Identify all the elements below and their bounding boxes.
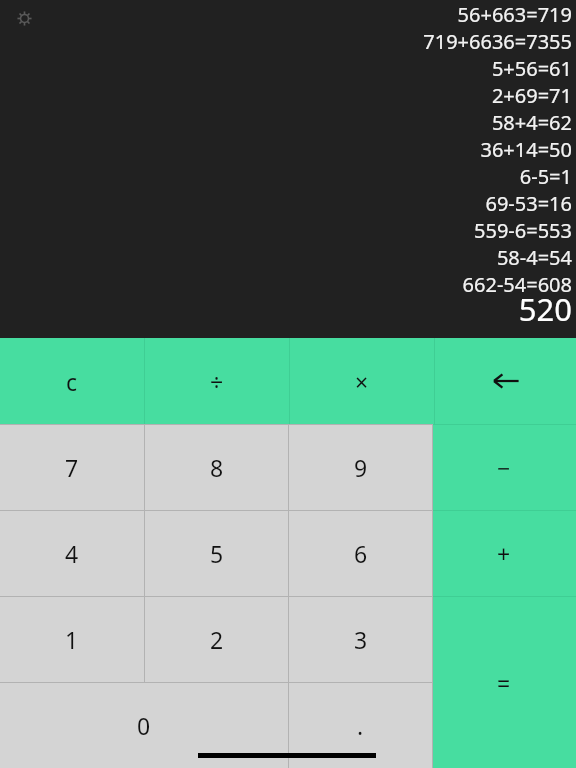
button[interactable]: =	[432, 597, 576, 768]
staticText: 2	[210, 624, 224, 655]
button[interactable]: Backspace	[435, 338, 576, 424]
staticText: c	[66, 366, 78, 397]
staticText: 0	[137, 710, 151, 741]
button[interactable]: .	[289, 683, 432, 768]
staticText: 6	[354, 538, 368, 569]
staticText: 36+14=50	[480, 136, 572, 163]
staticText: 662-54=608	[462, 271, 572, 298]
button[interactable]: 4	[0, 511, 144, 596]
staticText: .	[357, 710, 364, 741]
staticText: 58-4=54	[496, 244, 572, 271]
button[interactable]: 9	[289, 425, 432, 510]
staticText: −	[497, 452, 511, 483]
staticText: 1	[65, 624, 79, 655]
staticText: 3	[354, 624, 368, 655]
staticText: 69-53=16	[485, 190, 572, 217]
button[interactable]: 0	[0, 683, 288, 768]
button[interactable]: 2	[145, 597, 288, 682]
button[interactable]: 7	[0, 425, 144, 510]
staticText: 56+663=719	[457, 1, 572, 28]
button[interactable]: Settings	[12, 6, 36, 30]
staticText: 7	[65, 452, 79, 483]
button[interactable]: ×	[290, 338, 434, 424]
staticText: 2+69=71	[491, 82, 572, 109]
staticText: +	[497, 538, 511, 569]
staticText: 4	[65, 538, 79, 569]
button[interactable]: −	[432, 425, 576, 510]
staticText: 58+4=62	[491, 109, 572, 136]
staticText: 719+6636=7355	[423, 28, 572, 55]
button[interactable]: 3	[289, 597, 432, 682]
staticText: 5+56=61	[491, 55, 572, 82]
staticText: ÷	[210, 366, 224, 397]
staticText: 520	[518, 288, 572, 330]
button[interactable]: 6	[289, 511, 432, 596]
staticText: 9	[354, 452, 368, 483]
button[interactable]: 1	[0, 597, 144, 682]
button[interactable]: ÷	[145, 338, 289, 424]
staticText: ×	[355, 366, 369, 397]
button[interactable]: +	[432, 511, 576, 596]
staticText: 8	[210, 452, 224, 483]
staticText: 6-5=1	[519, 163, 572, 190]
button[interactable]: 8	[145, 425, 288, 510]
staticText: =	[497, 667, 511, 698]
staticText: 5	[210, 538, 224, 569]
staticText: 559-6=553	[474, 217, 572, 244]
button[interactable]: c	[0, 338, 144, 424]
button[interactable]: 5	[145, 511, 288, 596]
